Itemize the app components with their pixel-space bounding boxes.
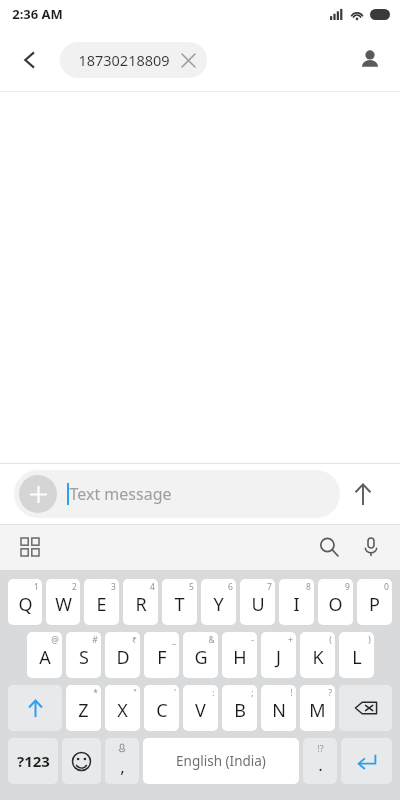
button[interactable]: 8 <box>279 579 314 625</box>
staticText: 6 <box>228 581 233 593</box>
staticText: P <box>369 592 380 617</box>
staticText: C <box>156 698 168 723</box>
button[interactable]: Voice input <box>350 526 392 568</box>
staticText: G <box>194 645 208 670</box>
staticText: D <box>116 645 130 670</box>
staticText: . <box>318 753 323 776</box>
staticText: M <box>309 698 326 723</box>
button[interactable]: 6 <box>201 579 236 625</box>
button[interactable]: Search <box>308 526 350 568</box>
button[interactable]: & <box>183 632 218 678</box>
staticText: 8 <box>306 581 311 593</box>
staticText: I <box>293 592 300 617</box>
staticText: L <box>352 645 362 670</box>
button[interactable]: - <box>222 632 257 678</box>
button[interactable]: 4 <box>123 579 158 625</box>
staticText: # <box>92 634 98 646</box>
staticText: R <box>135 592 147 617</box>
button[interactable]: # <box>66 632 101 678</box>
button[interactable]: ' <box>144 685 179 731</box>
button[interactable]: Keyboard menu <box>10 527 50 567</box>
staticText: " <box>133 687 137 699</box>
button[interactable]: : <box>183 685 218 731</box>
button[interactable]: Attach <box>14 470 340 518</box>
button[interactable]: ?123 <box>8 738 58 784</box>
button[interactable]: Backspace <box>339 685 392 731</box>
staticText: 9 <box>345 581 350 593</box>
staticText: 2 <box>72 581 77 593</box>
staticText: 18730218809 <box>78 50 170 70</box>
staticText: E <box>96 592 107 617</box>
staticText: ! <box>290 687 293 699</box>
button[interactable]: Shift <box>8 685 62 731</box>
staticText: ) <box>368 634 371 646</box>
staticText: 5 <box>189 581 194 593</box>
staticText: 0 <box>384 581 389 593</box>
staticText: + <box>288 634 293 646</box>
staticText: V <box>195 698 206 723</box>
staticText: 3 <box>111 581 116 593</box>
button[interactable]: , <box>105 738 139 784</box>
staticText: Text message <box>69 483 172 505</box>
button[interactable]: @ <box>27 632 62 678</box>
staticText: F <box>157 645 167 670</box>
button[interactable]: 5 <box>162 579 197 625</box>
button[interactable]: Send <box>340 470 386 518</box>
button[interactable]: Attach <box>19 475 57 513</box>
button[interactable]: Emoji <box>62 738 101 784</box>
button[interactable]: English (India) <box>143 738 299 784</box>
button[interactable]: ₹ <box>105 632 140 678</box>
staticText: ; <box>251 687 254 699</box>
button[interactable]: ! <box>261 685 296 731</box>
staticText: U <box>251 592 265 617</box>
staticText: 1 <box>34 581 39 593</box>
staticText: B <box>234 698 246 723</box>
staticText: 4 <box>150 581 155 593</box>
button[interactable]: 7 <box>240 579 275 625</box>
staticText: 2:36 AM <box>12 5 63 23</box>
staticText: _ <box>172 634 176 646</box>
button[interactable]: 0 <box>357 579 392 625</box>
staticText: ( <box>329 634 332 646</box>
button[interactable]: _ <box>144 632 179 678</box>
staticText: ?123 <box>17 751 50 771</box>
staticText: W <box>55 592 72 617</box>
staticText: - <box>251 634 254 646</box>
button[interactable]: + <box>261 632 296 678</box>
staticText: J <box>276 645 281 670</box>
button[interactable]: 2 <box>46 579 80 625</box>
staticText: X <box>117 698 128 723</box>
staticText: : <box>212 687 215 699</box>
staticText: Z <box>78 698 89 723</box>
staticText: & <box>208 634 215 646</box>
button[interactable]: Enter <box>341 738 392 784</box>
staticText: O <box>328 592 343 617</box>
button[interactable]: 3 <box>84 579 119 625</box>
staticText: * <box>93 687 98 699</box>
staticText: 7 <box>267 581 272 593</box>
staticText: K <box>312 645 324 670</box>
button[interactable]: 9 <box>318 579 353 625</box>
staticText: Q <box>18 592 33 617</box>
button[interactable]: ; <box>222 685 257 731</box>
staticText: English (India) <box>176 752 266 770</box>
button[interactable]: " <box>105 685 140 731</box>
staticText: ? <box>328 687 332 699</box>
staticText: ₹ <box>132 634 137 646</box>
button[interactable]: Contact details <box>348 38 392 82</box>
staticText: H <box>233 645 247 670</box>
button[interactable]: ( <box>300 632 335 678</box>
button[interactable]: 18730218809 <box>60 42 207 78</box>
staticText: Y <box>213 592 224 617</box>
button[interactable]: * <box>66 685 101 731</box>
staticText: T <box>174 592 185 617</box>
staticText: A <box>39 645 51 670</box>
staticText: , <box>120 755 125 778</box>
button[interactable]: Back <box>8 38 52 82</box>
staticText: @ <box>51 634 59 646</box>
button[interactable]: !? <box>303 738 337 784</box>
button[interactable]: 1 <box>8 579 42 625</box>
staticText: N <box>272 698 286 723</box>
button[interactable]: ) <box>339 632 374 678</box>
button[interactable]: ? <box>300 685 335 731</box>
